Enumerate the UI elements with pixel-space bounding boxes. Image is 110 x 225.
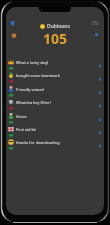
button[interactable]: thrive bbox=[6, 113, 104, 126]
staticText: What a lucky dog! bbox=[16, 60, 49, 65]
staticText: Whatcha hey Hher! bbox=[16, 100, 51, 105]
staticText: 105 bbox=[43, 29, 68, 48]
other: Open details bbox=[98, 77, 102, 81]
other: Open details bbox=[98, 91, 102, 95]
button[interactable]: First aid kit bbox=[6, 126, 104, 139]
staticText: Friendly wizard bbox=[16, 87, 44, 92]
staticText: thrive bbox=[16, 114, 27, 119]
button[interactable]: Whatcha hey Hher! bbox=[6, 99, 104, 112]
other: Open details bbox=[98, 144, 102, 148]
staticText: Dubloons bbox=[47, 23, 70, 30]
staticText: thanks for downloading bbox=[16, 140, 60, 145]
staticText: bought some teamwork bbox=[16, 73, 60, 78]
button[interactable]: bought some teamwork bbox=[6, 72, 104, 85]
button[interactable]: What a lucky dog! bbox=[6, 59, 104, 72]
button[interactable]: thanks for downloading bbox=[6, 139, 104, 152]
staticText: EM bbox=[92, 20, 99, 26]
button[interactable]: Friendly wizard bbox=[6, 86, 104, 99]
other: Open details bbox=[98, 118, 102, 122]
staticText: First aid kit bbox=[16, 127, 36, 132]
other: Open details bbox=[98, 104, 102, 108]
other: Open details bbox=[98, 64, 102, 68]
other: Open details bbox=[98, 131, 102, 135]
